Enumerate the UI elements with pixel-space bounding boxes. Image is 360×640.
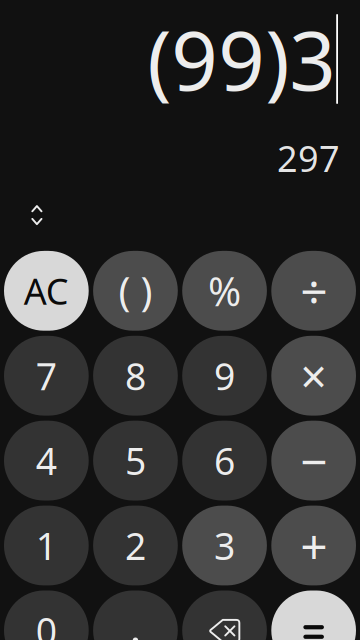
button[interactable]: Equals bbox=[271, 590, 356, 640]
staticText: 1 bbox=[36, 521, 57, 570]
button[interactable]: × bbox=[271, 336, 356, 416]
staticText: 4 bbox=[36, 436, 57, 485]
button[interactable]: AC bbox=[4, 251, 89, 331]
staticText: 297 bbox=[277, 134, 340, 182]
button[interactable]: − bbox=[271, 421, 356, 500]
button[interactable]: ( ) bbox=[93, 251, 178, 331]
button[interactable]: Decimal point bbox=[93, 590, 178, 640]
staticText: % bbox=[208, 264, 241, 317]
staticText: 2 bbox=[125, 521, 146, 570]
button[interactable]: + bbox=[271, 506, 356, 585]
staticText: × bbox=[300, 345, 327, 407]
button[interactable]: Show history bbox=[20, 194, 53, 236]
button[interactable]: 9 bbox=[182, 336, 267, 416]
button[interactable]: % bbox=[182, 251, 267, 331]
button[interactable]: 1 bbox=[4, 506, 89, 585]
staticText: 0 bbox=[36, 606, 57, 640]
staticText: − bbox=[300, 429, 327, 492]
staticText: 7 bbox=[36, 351, 57, 400]
button[interactable]: Delete bbox=[182, 590, 267, 640]
button[interactable]: 2 bbox=[93, 506, 178, 585]
staticText: 9 bbox=[214, 351, 235, 400]
staticText: 6 bbox=[214, 436, 235, 485]
staticText: 5 bbox=[125, 436, 146, 485]
button[interactable]: 3 bbox=[182, 506, 267, 585]
button[interactable]: 8 bbox=[93, 336, 178, 416]
staticText: ( ) bbox=[118, 264, 152, 317]
staticText: + bbox=[300, 514, 327, 577]
staticText: 3 bbox=[214, 521, 235, 570]
staticText: ÷ bbox=[300, 259, 327, 323]
staticText: AC bbox=[24, 267, 69, 315]
staticText: (99)3 bbox=[147, 5, 336, 113]
button[interactable]: 5 bbox=[93, 421, 178, 500]
button[interactable]: 7 bbox=[4, 336, 89, 416]
button[interactable]: 6 bbox=[182, 421, 267, 500]
button[interactable]: ÷ bbox=[271, 251, 356, 331]
button[interactable]: 0 bbox=[4, 590, 89, 640]
staticText: 8 bbox=[125, 351, 146, 400]
button[interactable]: 4 bbox=[4, 421, 89, 500]
